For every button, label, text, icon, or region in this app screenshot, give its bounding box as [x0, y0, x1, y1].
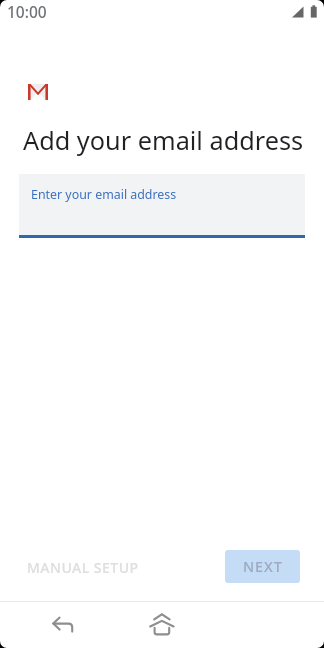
- staticText: NEXT: [243, 557, 283, 577]
- button[interactable]: Enter your email address: [19, 174, 305, 238]
- staticText: Add your email address: [23, 123, 304, 157]
- button[interactable]: Back: [32, 602, 96, 648]
- staticText: MANUAL SETUP: [27, 558, 139, 577]
- staticText: 10:00: [7, 1, 47, 22]
- button[interactable]: Home: [130, 599, 194, 645]
- button[interactable]: MANUAL SETUP: [19, 549, 147, 586]
- staticText: Enter your email address: [31, 186, 177, 203]
- button[interactable]: NEXT: [225, 550, 300, 583]
